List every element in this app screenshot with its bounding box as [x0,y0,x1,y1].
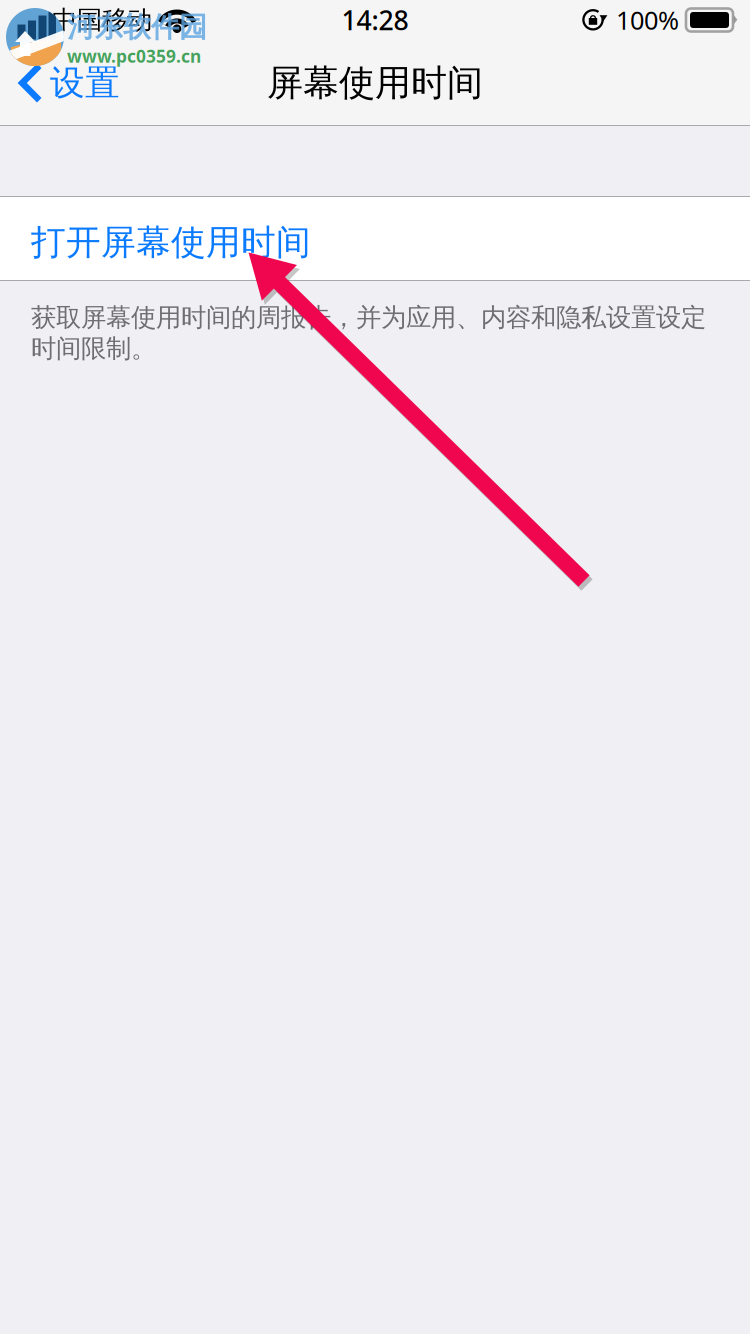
staticText: 屏幕使用时间 [267,61,483,105]
button[interactable]: 设置 [0,40,134,126]
staticText: 14:28 [341,2,408,38]
staticText: 河东软件园 [67,10,207,44]
staticText: 100% [616,3,679,37]
staticText: 设置 [50,62,120,104]
staticText: 获取屏幕使用时间的周报告，并为应用、内容和隐私设置设定时间限制。 [31,302,706,364]
button[interactable]: 打开屏幕使用时间 [0,196,750,281]
staticText: www.pc0359.cn [67,44,201,67]
staticText: 打开屏幕使用时间 [31,221,311,264]
staticText: 中国移动 [52,4,152,35]
